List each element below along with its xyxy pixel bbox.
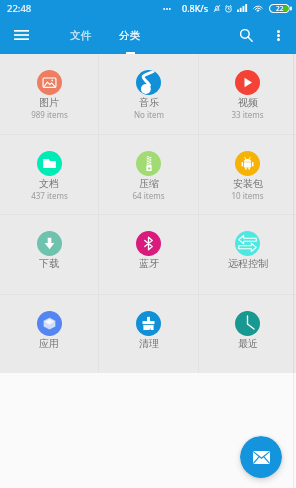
button[interactable]: Search — [230, 19, 262, 51]
button[interactable]: Menu — [5, 19, 37, 51]
button[interactable]: 最近 — [199, 295, 296, 373]
staticText: 10 items — [231, 190, 264, 201]
staticText: 应用 — [39, 337, 59, 350]
button[interactable]: 应用 — [0, 295, 98, 373]
button[interactable]: 安装包 — [199, 135, 296, 214]
staticText: 22:48 — [7, 2, 32, 15]
button[interactable]: 下载 — [0, 215, 98, 294]
staticText: 下载 — [39, 257, 59, 270]
button[interactable]: 图片 — [0, 54, 98, 134]
staticText: 视频 — [238, 96, 258, 109]
staticText: 33 items — [231, 109, 264, 120]
button[interactable]: 文档 — [0, 135, 98, 214]
button[interactable]: 音乐 — [99, 54, 198, 134]
staticText: 22 — [276, 4, 284, 13]
staticText: 989 items — [31, 109, 68, 120]
button[interactable]: 蓝牙 — [99, 215, 198, 294]
staticText: 压缩 — [139, 177, 159, 190]
staticText: 文档 — [39, 177, 59, 190]
staticText: No item — [134, 109, 164, 120]
staticText: 最近 — [238, 337, 258, 350]
staticText: 437 items — [31, 190, 68, 201]
staticText: 64 items — [132, 190, 165, 201]
staticText: 音乐 — [139, 96, 159, 109]
button[interactable]: 清理 — [99, 295, 198, 373]
staticText: 分类 — [119, 29, 140, 42]
staticText: 0.8K/s — [182, 2, 208, 14]
button[interactable]: 文件 — [62, 23, 99, 48]
button[interactable]: 分类 — [111, 23, 148, 48]
staticText: 图片 — [39, 96, 59, 109]
staticText: 清理 — [139, 337, 159, 350]
staticText: 安装包 — [233, 177, 263, 190]
button[interactable]: More options — [264, 21, 292, 49]
button[interactable]: Send message — [240, 436, 282, 478]
staticText: 文件 — [70, 29, 91, 42]
button[interactable]: 压缩 — [99, 135, 198, 214]
button[interactable]: 远程控制 — [199, 215, 296, 294]
staticText: 远程控制 — [228, 257, 268, 270]
staticText: 蓝牙 — [139, 257, 159, 270]
button[interactable]: 视频 — [199, 54, 296, 134]
